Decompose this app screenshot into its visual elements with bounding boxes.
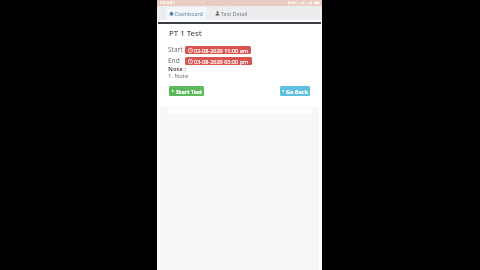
button[interactable]: Go Back [280, 86, 310, 96]
staticText: Dashboard [175, 10, 203, 17]
button[interactable]: Dashboard [166, 7, 206, 20]
staticText: 03-08-2020 03:00 pm [194, 58, 249, 65]
staticText: PT 1 Test [169, 28, 202, 39]
staticText: Start Test [176, 88, 203, 95]
staticText: 02-08-2020 11:00 am [194, 47, 248, 54]
button[interactable]: 03-08-2020 03:00 pm [185, 57, 252, 65]
button[interactable]: Start Test [169, 86, 204, 96]
staticText: Start [168, 45, 183, 54]
staticText: 1. Note [168, 72, 189, 80]
staticText: Note : [168, 65, 187, 73]
button[interactable]: Test Detail [212, 7, 251, 20]
staticText: Test Detail [221, 10, 248, 17]
staticText: Go Back [286, 88, 309, 95]
staticText: End [168, 56, 180, 65]
button[interactable]: 02-08-2020 11:00 am [185, 46, 251, 54]
